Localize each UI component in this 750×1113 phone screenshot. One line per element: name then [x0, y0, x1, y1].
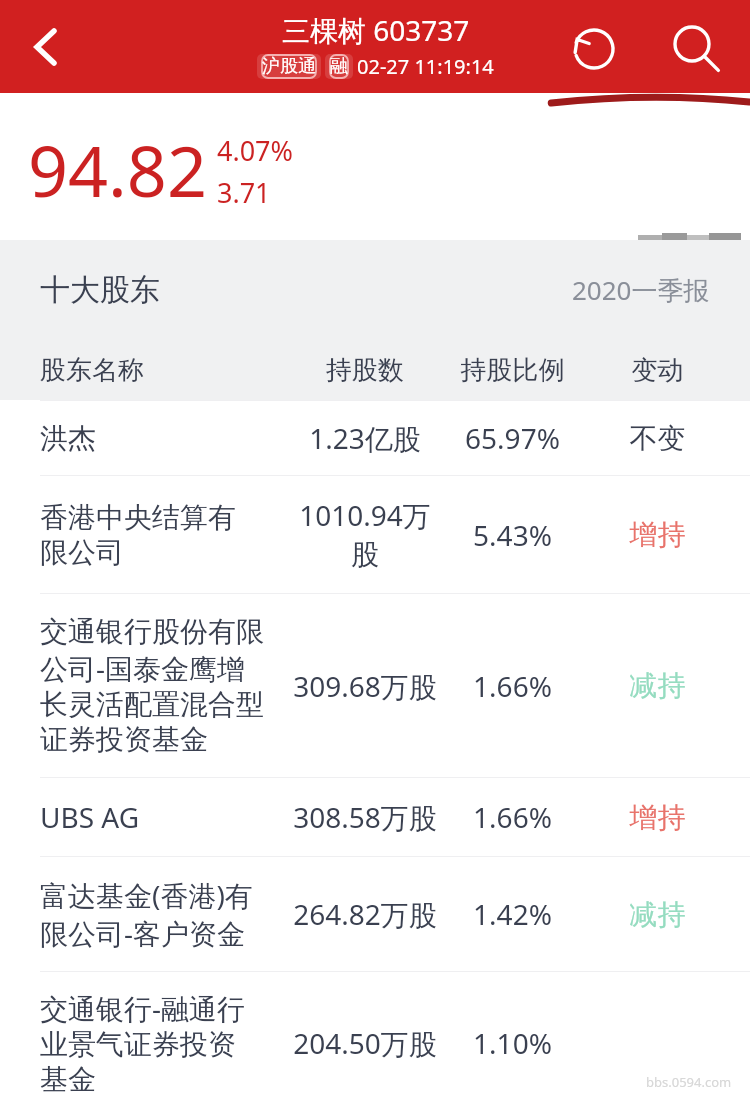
- staticText: 309.68万股: [290, 667, 440, 705]
- staticText: 1.10%: [440, 1024, 585, 1062]
- staticText: 变动: [585, 354, 730, 387]
- button[interactable]: 洪杰: [0, 401, 750, 475]
- staticText: 264.82万股: [290, 895, 440, 933]
- staticText: 富达基金(香港)有: [40, 876, 253, 914]
- staticText: 1.42%: [440, 895, 585, 933]
- staticText: bbs.0594.com: [646, 1073, 732, 1091]
- staticText: 香港中央结算有: [40, 500, 236, 535]
- button[interactable]: 富达基金(香港)有: [0, 857, 750, 971]
- button[interactable]: 交通银行股份有限: [0, 594, 750, 777]
- staticText: 2020一季报: [572, 272, 710, 308]
- staticText: 4.07%: [217, 132, 294, 169]
- staticText: 1.66%: [440, 667, 585, 705]
- staticText: 业景气证券投资: [40, 1027, 236, 1062]
- staticText: 持股数: [290, 354, 440, 387]
- staticText: 减持: [585, 897, 730, 932]
- staticText: 1.66%: [440, 798, 585, 836]
- staticText: 增持: [585, 800, 730, 835]
- staticText: 持股比例: [440, 354, 585, 387]
- staticText: 308.58万股: [290, 798, 440, 836]
- staticText: 融: [330, 55, 348, 78]
- button[interactable]: UBS AG: [0, 778, 750, 856]
- staticText: 洪杰: [40, 421, 96, 456]
- button[interactable]: Search: [668, 21, 720, 73]
- button[interactable]: Refresh: [568, 21, 620, 73]
- button[interactable]: 十大股东: [40, 240, 710, 340]
- staticText: 限公司: [40, 535, 124, 570]
- staticText: UBS AG: [40, 798, 140, 836]
- staticText: 5.43%: [440, 516, 585, 554]
- staticText: 三棵树 603737: [282, 11, 470, 49]
- staticText: 长灵活配置混合型: [40, 687, 264, 722]
- staticText: 1.23亿股: [290, 419, 440, 457]
- staticText: 减持: [585, 668, 730, 703]
- staticText: 不变: [585, 421, 730, 456]
- staticText: 公司-国泰金鹰增: [40, 649, 246, 687]
- staticText: 交通银行-融通行: [40, 989, 246, 1027]
- staticText: 3.71: [217, 174, 271, 211]
- staticText: 94.82: [28, 122, 207, 217]
- staticText: 1010.94万股: [290, 496, 440, 573]
- staticText: 限公司-客户资金: [40, 914, 246, 952]
- staticText: 十大股东: [40, 271, 160, 309]
- staticText: 股东名称: [40, 354, 290, 387]
- staticText: 沪股通: [262, 55, 316, 78]
- staticText: 增持: [585, 517, 730, 552]
- staticText: 基金: [40, 1062, 96, 1097]
- staticText: 204.50万股: [290, 1024, 440, 1062]
- staticText: 交通银行股份有限: [40, 614, 264, 649]
- staticText: 65.97%: [440, 419, 585, 457]
- button[interactable]: 交通银行-融通行: [0, 972, 750, 1113]
- staticText: 02-27 11:19:14: [357, 53, 494, 80]
- button[interactable]: 香港中央结算有: [0, 476, 750, 593]
- staticText: 证券投资基金: [40, 722, 208, 757]
- button[interactable]: Back: [14, 16, 76, 78]
